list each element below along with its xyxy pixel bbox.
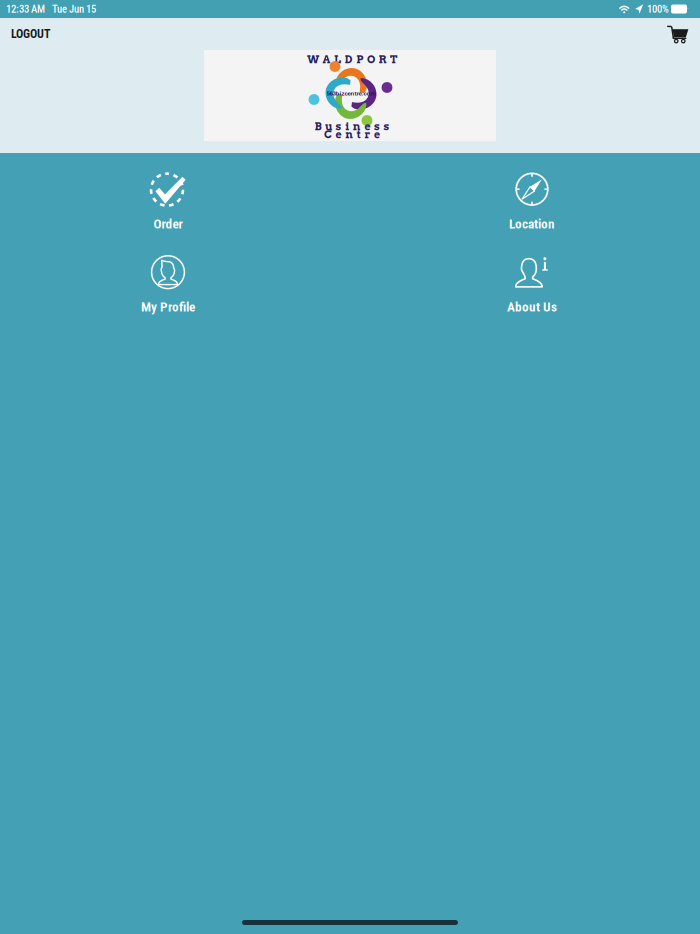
button[interactable]: Order [93, 170, 243, 253]
staticText: Order [153, 216, 182, 232]
button[interactable]: About Us [457, 253, 607, 336]
staticText: My Profile [141, 299, 195, 315]
staticText: Business [314, 120, 390, 133]
staticText: About Us [507, 299, 557, 315]
staticText: 12:33 AM [6, 3, 45, 15]
button[interactable]: Location [457, 170, 607, 253]
staticText: 100% [647, 3, 669, 15]
staticText: Centre [324, 128, 380, 141]
button[interactable]: Cart [657, 20, 700, 48]
staticText: 563bizcentre.com [326, 90, 375, 97]
staticText: LOGOUT [11, 27, 51, 41]
staticText: Location [509, 216, 555, 232]
button[interactable]: My Profile [93, 253, 243, 336]
staticText: Tue Jun 15 [52, 3, 96, 15]
button[interactable]: LOGOUT [0, 22, 62, 46]
staticText: WALDPORT [307, 53, 397, 66]
